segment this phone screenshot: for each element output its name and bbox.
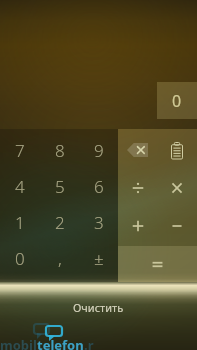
staticText: 8 — [55, 139, 65, 162]
staticText: 0 — [172, 90, 182, 112]
staticText: 4 — [15, 175, 25, 198]
button[interactable]: Minus — [157, 207, 197, 245]
button[interactable]: Divide — [118, 169, 157, 207]
button[interactable] — [118, 246, 197, 282]
button[interactable]: Paste from clipboard — [157, 131, 197, 169]
staticText: , — [58, 247, 62, 270]
button[interactable]: 9 — [79, 132, 118, 168]
staticText: 1 — [15, 211, 25, 234]
staticText: mobil — [0, 336, 37, 350]
staticText: 0 — [15, 247, 25, 270]
button[interactable]: ± — [79, 240, 118, 276]
button[interactable]: Multiply — [157, 169, 197, 207]
button[interactable]: 8 — [40, 132, 79, 168]
button[interactable]: 4 — [0, 168, 40, 204]
button[interactable]: Backspace — [118, 131, 157, 169]
button[interactable]: 2 — [40, 204, 79, 240]
staticText: telefon — [37, 336, 84, 350]
staticText: 2 — [55, 211, 65, 234]
button[interactable]: 1 — [0, 204, 40, 240]
button[interactable]: 3 — [79, 204, 118, 240]
button[interactable]: 5 — [40, 168, 79, 204]
staticText: 6 — [94, 175, 104, 198]
button[interactable]: 7 — [0, 132, 40, 168]
button[interactable]: Plus — [118, 207, 157, 245]
button[interactable]: 6 — [79, 168, 118, 204]
button[interactable]: , — [40, 240, 79, 276]
button[interactable]: 0 — [0, 240, 40, 276]
staticText: ± — [94, 247, 104, 270]
staticText: 3 — [94, 211, 104, 234]
button[interactable]: Очистить — [0, 297, 197, 317]
button[interactable]: 0 — [157, 82, 197, 119]
staticText: Очистить — [73, 300, 124, 315]
staticText: 9 — [94, 139, 104, 162]
staticText: 7 — [15, 139, 25, 162]
staticText: 5 — [55, 175, 65, 198]
staticText: .ru — [84, 336, 100, 350]
